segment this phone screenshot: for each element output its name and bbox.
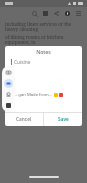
- staticText: of dining rooms or kitchen equipment, to: [5, 34, 82, 46]
- button[interactable]: Bookmark: [40, 8, 51, 19]
- button[interactable]: Search: [29, 8, 40, 19]
- staticText: Cancel: [16, 116, 32, 123]
- button[interactable]: Stamp: [4, 90, 13, 99]
- staticText: Save: [58, 116, 69, 123]
- button[interactable]: Camera: [4, 68, 13, 77]
- button[interactable]: Share: [51, 8, 62, 19]
- button[interactable]: Cancel: [5, 113, 43, 126]
- button[interactable]: Highlight: [4, 79, 13, 88]
- staticText: Notes: [36, 48, 51, 55]
- button[interactable]: More options: [73, 8, 84, 19]
- button[interactable]: Save: [44, 113, 82, 126]
- staticText: occur during slow times or when the dini…: [5, 47, 82, 59]
- staticText: Cuisine: [14, 59, 31, 66]
- staticText: room is closed. A successful restaurant …: [5, 60, 82, 72]
- button[interactable]: Cuisine: [5, 56, 82, 68]
- staticText: on many skills but the project managemen…: [5, 73, 82, 85]
- button[interactable]: Colour: [4, 101, 13, 110]
- staticText: including linen services or the heavy cl…: [5, 21, 82, 33]
- staticText: …gan Made from…: [15, 92, 52, 98]
- button[interactable]: Info: [62, 8, 73, 19]
